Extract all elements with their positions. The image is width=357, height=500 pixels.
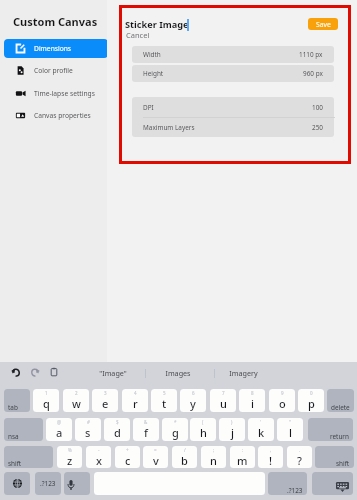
button[interactable]: Dimensions — [4, 39, 108, 58]
staticText: Maximum Layers — [143, 123, 195, 132]
button[interactable]: Paste — [49, 367, 59, 377]
button[interactable]: ) — [219, 418, 245, 441]
button[interactable]: Color profile — [4, 61, 108, 80]
button[interactable]: / — [172, 446, 197, 468]
button[interactable]: 3 — [92, 389, 118, 412]
button[interactable]: .?123 — [268, 472, 307, 495]
staticText: j — [231, 425, 234, 440]
button[interactable]: 2 — [63, 389, 89, 412]
button[interactable]: & — [133, 418, 159, 441]
staticText: s — [85, 425, 91, 440]
staticText: l — [289, 425, 292, 440]
staticText: Canvas properties — [34, 111, 91, 120]
button[interactable]: Next keyboard — [4, 472, 30, 495]
button[interactable]: = — [143, 446, 168, 468]
button[interactable]: 0 — [298, 389, 324, 412]
button[interactable]: + — [115, 446, 140, 468]
staticText: DPI — [143, 103, 154, 112]
staticText: e — [102, 396, 109, 411]
button[interactable]: Width — [132, 46, 334, 63]
button[interactable]: delete — [327, 389, 354, 412]
staticText: v — [153, 453, 159, 468]
staticText: ; — [213, 447, 215, 453]
button[interactable]: $ — [104, 418, 130, 441]
button[interactable]: Dictation — [64, 472, 90, 495]
staticText: k — [258, 425, 265, 440]
staticText: .?123 — [40, 479, 56, 488]
button[interactable]: shift — [315, 446, 354, 468]
staticText: 2 — [75, 390, 78, 396]
staticText: return — [330, 432, 349, 441]
staticText: ? — [297, 453, 302, 468]
staticText: delete — [331, 403, 350, 412]
button[interactable]: 8 — [239, 389, 265, 412]
button[interactable]: return — [308, 418, 353, 441]
staticText: b — [181, 453, 188, 468]
staticText: h — [200, 425, 207, 440]
staticText: % — [68, 447, 72, 453]
button[interactable]: , — [258, 446, 283, 468]
button[interactable]: Images — [148, 362, 208, 383]
button[interactable]: 4 — [122, 389, 148, 412]
button[interactable]: 1 — [33, 389, 59, 412]
button[interactable]: . — [287, 446, 312, 468]
staticText: / — [184, 447, 186, 453]
button[interactable]: # — [75, 418, 101, 441]
staticText: tab — [8, 403, 18, 412]
button[interactable]: DPI — [132, 97, 334, 117]
staticText: 960 px — [303, 69, 323, 78]
staticText: u — [220, 396, 227, 411]
staticText: q — [43, 396, 50, 411]
staticText: 100 — [312, 103, 323, 112]
button[interactable]: Redo — [30, 367, 40, 377]
staticText: Time-lapse settings — [34, 89, 95, 98]
staticText: y — [190, 396, 196, 411]
staticText: w — [72, 396, 81, 411]
button[interactable]: 5 — [151, 389, 177, 412]
staticText: nsa — [8, 432, 19, 441]
button[interactable]: " — [277, 418, 303, 441]
button[interactable]: shift — [4, 446, 53, 468]
staticText: .?123 — [287, 486, 303, 495]
staticText: Width — [143, 50, 161, 59]
button[interactable]: Save — [308, 18, 338, 30]
button[interactable]: * — [162, 418, 188, 441]
button[interactable]: "Image" — [83, 362, 143, 383]
staticText: $ — [116, 419, 119, 425]
button[interactable]: - — [86, 446, 111, 468]
staticText: + — [126, 447, 129, 453]
button[interactable]: 9 — [269, 389, 295, 412]
staticText: r — [133, 396, 138, 411]
button[interactable]: Hide keyboard — [312, 472, 353, 495]
button[interactable]: Time-lapse settings — [4, 84, 108, 103]
button[interactable]: Cancel — [126, 30, 150, 40]
button[interactable]: Canvas properties — [4, 106, 108, 125]
button[interactable]: 7 — [210, 389, 236, 412]
staticText: 6 — [192, 390, 195, 396]
button[interactable]: ' — [248, 418, 274, 441]
button[interactable]: Maximum Layers — [132, 117, 334, 137]
button[interactable]: tab — [4, 389, 30, 412]
staticText: - — [98, 447, 100, 453]
button[interactable]: % — [57, 446, 82, 468]
button[interactable]: .?123 — [35, 472, 61, 495]
button[interactable]: @ — [46, 418, 72, 441]
button[interactable]: : — [230, 446, 255, 468]
staticText: & — [144, 419, 148, 425]
staticText: ( — [202, 419, 204, 425]
button[interactable]: Undo — [11, 367, 21, 377]
staticText: 8 — [251, 390, 254, 396]
button[interactable]: ( — [190, 418, 216, 441]
button[interactable]: nsa — [4, 418, 43, 441]
button[interactable]: ; — [201, 446, 226, 468]
button[interactable]: 6 — [180, 389, 206, 412]
staticText: 7 — [222, 390, 225, 396]
staticText: Height — [143, 69, 164, 78]
button[interactable]: Height — [132, 65, 334, 82]
button[interactable]: Imagery — [213, 362, 273, 383]
staticText: a — [56, 425, 63, 440]
staticText: 0 — [310, 390, 313, 396]
staticText: Imagery — [229, 368, 258, 378]
staticText: 1 — [45, 390, 48, 396]
